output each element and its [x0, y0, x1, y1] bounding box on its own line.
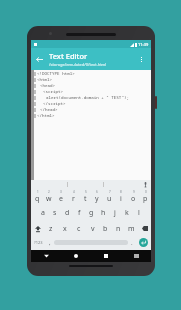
button[interactable]: s	[49, 205, 61, 221]
staticText: <head>	[40, 83, 56, 89]
button[interactable]: l	[133, 205, 145, 221]
staticText: y	[95, 194, 99, 204]
button[interactable]: x	[58, 221, 72, 236]
staticText: u	[107, 194, 112, 204]
button[interactable]: b	[99, 221, 112, 236]
button[interactable]: j	[109, 205, 121, 221]
button[interactable]: 2	[43, 189, 55, 205]
button[interactable]: Switch keyboard	[121, 250, 151, 262]
staticText: k	[125, 208, 129, 218]
staticText: b	[103, 224, 108, 234]
staticText: 0	[145, 190, 147, 194]
staticText: </html>	[37, 113, 55, 119]
staticText: <html>	[37, 77, 53, 83]
staticText: ?123	[34, 240, 43, 245]
button[interactable]: 0	[139, 189, 151, 205]
button[interactable]: m	[125, 221, 138, 236]
staticText: /storage/emulated/0/text.html	[49, 62, 107, 67]
staticText: t	[84, 194, 87, 204]
staticText: g	[89, 208, 94, 218]
button[interactable]: More options	[135, 53, 148, 66]
button[interactable]: Recents	[91, 250, 121, 262]
staticText: j	[114, 208, 116, 218]
staticText: z	[49, 224, 53, 234]
button[interactable]: v	[86, 221, 99, 236]
staticText: 8	[120, 190, 122, 194]
button[interactable]: Shift	[31, 221, 44, 236]
staticText: </script>	[43, 101, 66, 107]
staticText: d	[65, 208, 70, 218]
staticText: 9	[133, 190, 135, 194]
staticText: <script>	[43, 89, 64, 95]
button[interactable]: k	[121, 205, 133, 221]
staticText: 6	[96, 190, 98, 194]
staticText: 4	[73, 190, 75, 194]
button[interactable]: 4	[67, 189, 79, 205]
staticText: o	[131, 194, 136, 204]
staticText: 1	[37, 190, 39, 194]
staticText: alert(document.domain + " TEST");	[46, 95, 129, 101]
staticText: a	[41, 208, 45, 218]
staticText: r	[72, 194, 75, 204]
staticText: <!DOCTYPE html>	[37, 71, 75, 77]
button[interactable]: h	[97, 205, 109, 221]
button[interactable]: Home	[61, 250, 91, 262]
button[interactable]: ?123	[31, 236, 46, 249]
staticText: s	[53, 208, 57, 218]
button[interactable]: 9	[127, 189, 139, 205]
button[interactable]: 6	[91, 189, 103, 205]
staticText: </head>	[40, 107, 58, 113]
button[interactable]: 1	[31, 189, 43, 205]
staticText: p	[143, 194, 148, 204]
button[interactable]: 7	[103, 189, 115, 205]
button[interactable]: f	[73, 205, 85, 221]
staticText: 2	[48, 190, 50, 194]
staticText: 11:39	[138, 42, 149, 47]
button[interactable]: Hide keyboard	[31, 250, 61, 262]
button[interactable]: 8	[115, 189, 127, 205]
button[interactable]: Voice input	[139, 180, 151, 189]
staticText: f	[78, 208, 81, 218]
button[interactable]: c	[72, 221, 86, 236]
staticText: w	[46, 194, 52, 204]
button[interactable]: Backspace	[138, 221, 151, 236]
button[interactable]: .	[128, 236, 136, 249]
staticText: l	[138, 208, 140, 218]
staticText: Text Editor	[49, 51, 88, 61]
button[interactable]: 5	[79, 189, 91, 205]
button[interactable]: a	[37, 205, 49, 221]
staticText: .	[131, 239, 133, 247]
staticText: 5	[85, 190, 87, 194]
staticText: q	[35, 194, 40, 204]
staticText: 3	[60, 190, 62, 194]
button[interactable]: Enter	[136, 236, 151, 249]
staticText: ,	[49, 239, 51, 247]
staticText: v	[91, 224, 95, 234]
button[interactable]: d	[61, 205, 73, 221]
staticText: x	[63, 224, 67, 234]
button[interactable]: ,	[46, 236, 54, 249]
button[interactable]: n	[112, 221, 125, 236]
staticText: c	[77, 224, 81, 234]
staticText: i	[120, 194, 122, 204]
button[interactable]: 3	[55, 189, 67, 205]
button[interactable]: z	[44, 221, 58, 236]
staticText: m	[128, 224, 135, 234]
staticText: h	[101, 208, 106, 218]
staticText: 7	[109, 190, 111, 194]
button[interactable]: g	[85, 205, 97, 221]
button[interactable]: Back	[33, 53, 46, 66]
staticText: n	[116, 224, 121, 234]
staticText: e	[59, 194, 63, 204]
